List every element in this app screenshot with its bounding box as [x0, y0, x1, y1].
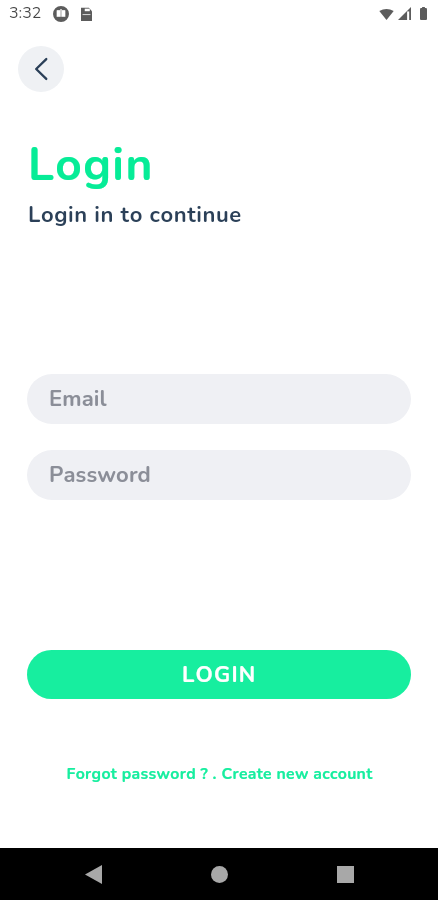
button[interactable]: Password: [27, 450, 411, 500]
button[interactable]: Back: [18, 46, 64, 92]
button[interactable]: LOGIN: [27, 650, 411, 699]
staticText: Password: [49, 460, 151, 490]
staticText: Login: [28, 133, 154, 196]
button[interactable]: Forgot password ? . Create new account: [58, 759, 381, 789]
button[interactable]: Back: [47, 848, 139, 900]
button[interactable]: Home: [173, 848, 265, 900]
staticText: Login in to continue: [28, 200, 242, 230]
staticText: LOGIN: [182, 660, 257, 690]
button[interactable]: Email: [27, 374, 411, 424]
button[interactable]: Recent apps: [299, 848, 391, 900]
staticText: Forgot password ? . Create new account: [66, 763, 373, 785]
staticText: 3:32: [9, 2, 42, 24]
staticText: Email: [49, 384, 107, 414]
